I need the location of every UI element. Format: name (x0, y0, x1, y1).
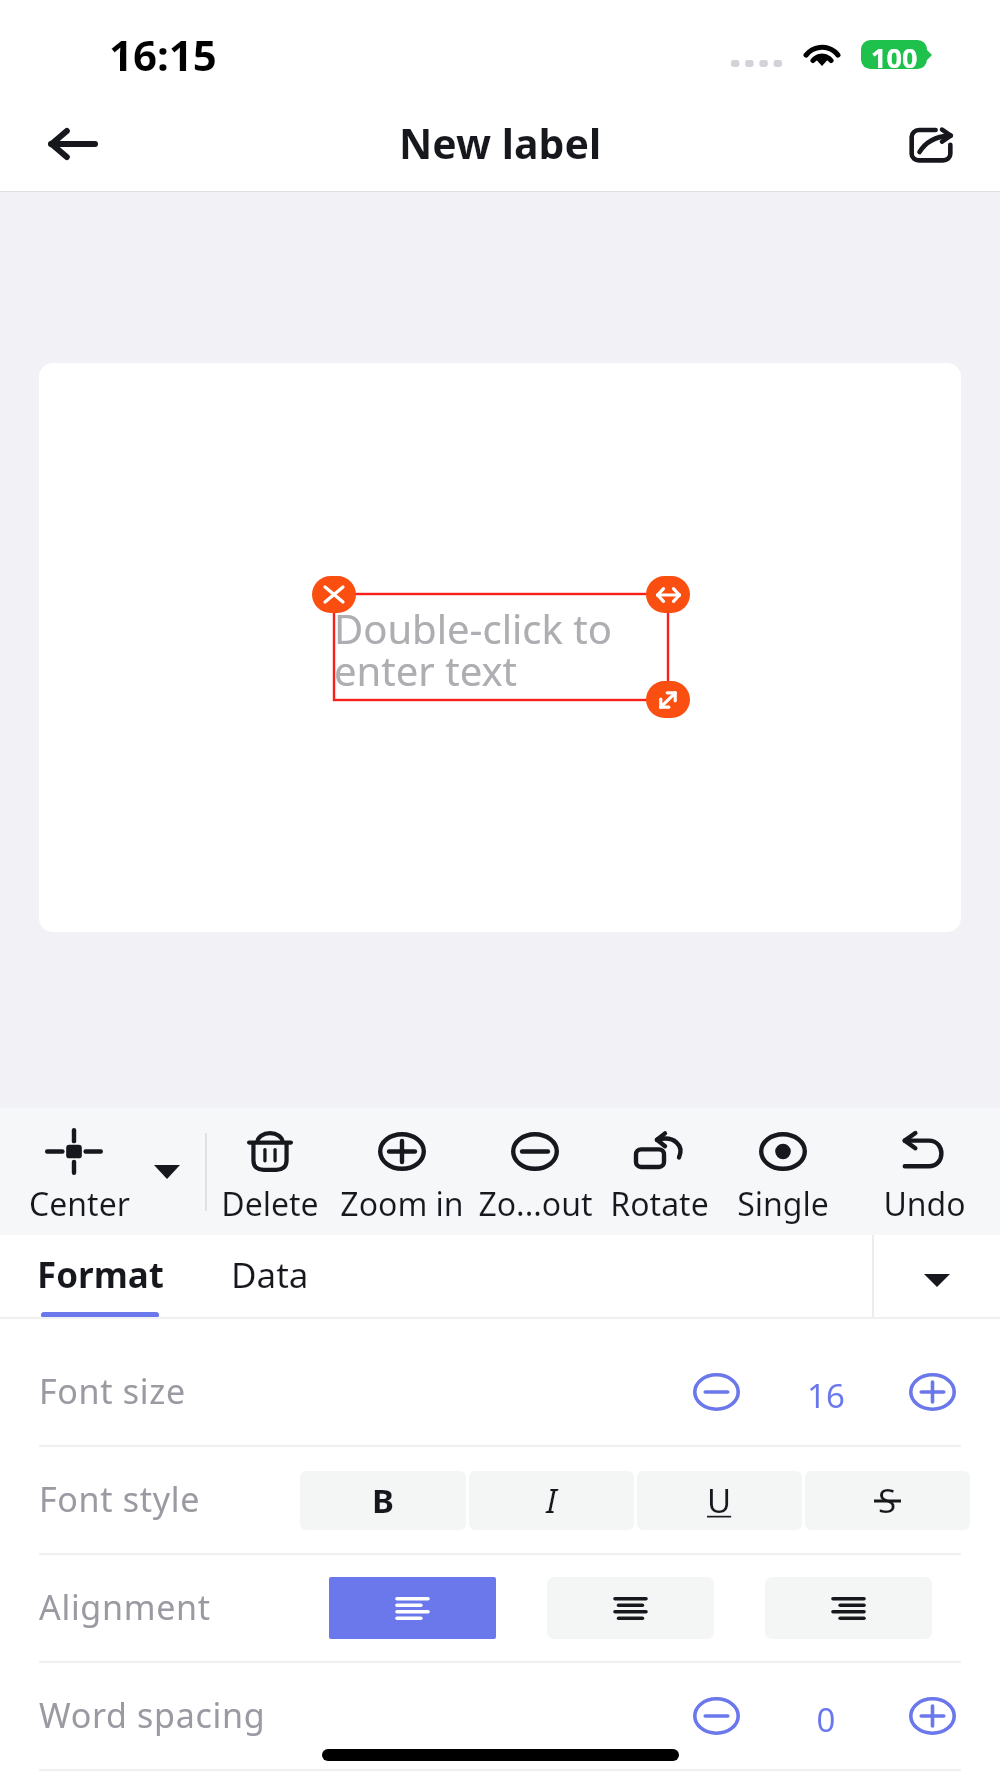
staticText: Alignment (39, 1584, 211, 1630)
button[interactable]: Collapse (873, 1235, 1000, 1317)
button[interactable] (848, 1108, 1000, 1235)
staticText: Center (29, 1182, 130, 1226)
staticText: I (546, 1478, 557, 1523)
staticText: Font size (39, 1368, 186, 1414)
button[interactable]: Increase (902, 1686, 962, 1746)
staticText: Format (37, 1251, 165, 1299)
button[interactable]: Align 1 (547, 1577, 714, 1639)
button[interactable] (600, 1108, 718, 1235)
button[interactable] (0, 1108, 206, 1235)
button[interactable]: Data (200, 1235, 340, 1317)
staticText: Font style (39, 1476, 201, 1522)
button[interactable]: Decrease (686, 1686, 746, 1746)
staticText: U (707, 1478, 732, 1523)
staticText: 0 (790, 1697, 862, 1742)
staticText: 16:15 (109, 26, 217, 83)
staticText: Word spacing (39, 1692, 266, 1738)
staticText: Rotate (610, 1182, 709, 1226)
staticText: S (878, 1478, 897, 1523)
staticText: Double-click to enter text (334, 601, 612, 698)
button[interactable]: Handle (312, 576, 356, 613)
staticText: B (372, 1478, 394, 1523)
staticText: 16 (790, 1373, 862, 1418)
staticText: Zoom in (340, 1182, 464, 1226)
staticText: Zo...out (478, 1182, 593, 1226)
button[interactable] (206, 1108, 334, 1235)
button[interactable]: Decrease (686, 1362, 746, 1422)
staticText: 100 (871, 40, 918, 68)
staticText: Single (737, 1182, 829, 1226)
button[interactable]: I (469, 1471, 634, 1530)
button[interactable]: Share (891, 104, 971, 184)
staticText: Delete (221, 1182, 319, 1226)
button[interactable]: B (300, 1471, 466, 1530)
button[interactable]: Handle (646, 681, 690, 718)
button[interactable]: Format (15, 1235, 187, 1317)
button[interactable]: S (805, 1471, 970, 1530)
staticText: Undo (883, 1182, 966, 1226)
button[interactable] (334, 1108, 470, 1235)
button[interactable] (718, 1108, 848, 1235)
staticText: New label (399, 115, 602, 171)
button[interactable]: Increase (902, 1362, 962, 1422)
button[interactable]: Handle (646, 576, 690, 613)
button[interactable]: Align 0 (329, 1577, 496, 1639)
staticText: Data (231, 1251, 309, 1299)
button[interactable]: Back (26, 106, 116, 182)
button[interactable] (470, 1108, 600, 1235)
button[interactable]: U (637, 1471, 802, 1530)
button[interactable]: Align 2 (765, 1577, 932, 1639)
